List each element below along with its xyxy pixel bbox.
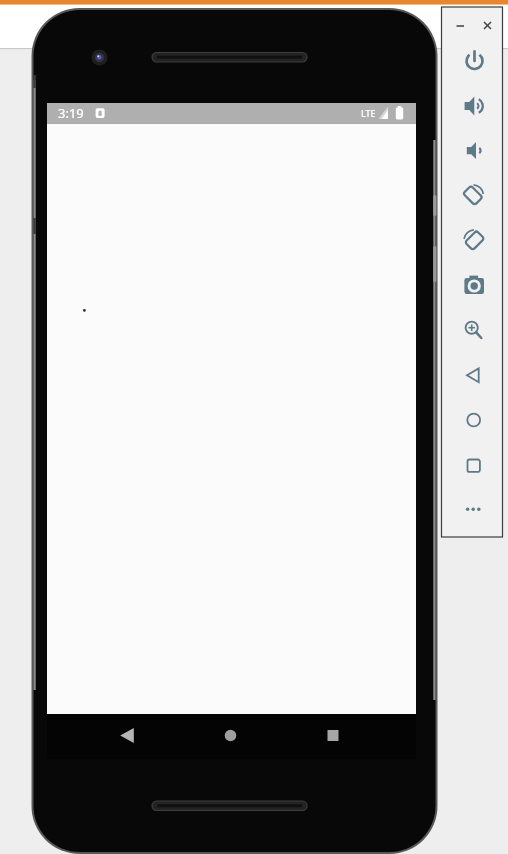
button[interactable] xyxy=(455,177,492,213)
button[interactable] xyxy=(455,357,492,393)
button[interactable] xyxy=(455,447,492,483)
button[interactable] xyxy=(455,492,492,528)
staticText: LTE xyxy=(361,107,376,119)
staticText: 3:19 xyxy=(58,104,84,122)
button[interactable] xyxy=(455,88,492,124)
button[interactable] xyxy=(479,17,495,33)
button[interactable] xyxy=(455,43,492,79)
button[interactable] xyxy=(455,402,492,438)
button[interactable] xyxy=(452,17,468,33)
button[interactable] xyxy=(455,266,492,302)
button[interactable] xyxy=(455,132,492,168)
button[interactable] xyxy=(309,714,357,759)
button[interactable] xyxy=(103,714,151,759)
button[interactable] xyxy=(455,312,492,348)
button[interactable] xyxy=(455,222,492,258)
button[interactable] xyxy=(207,714,255,759)
